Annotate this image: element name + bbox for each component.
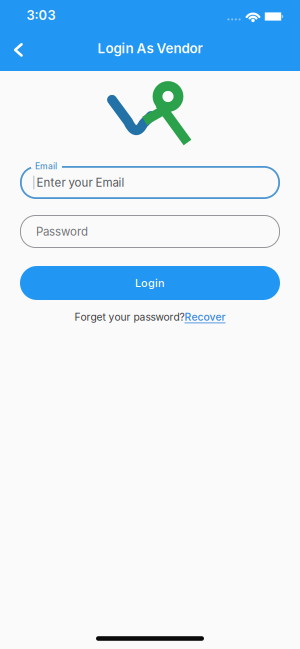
staticText: Login As Vendor — [97, 40, 202, 57]
button[interactable]: Password — [20, 215, 280, 248]
staticText: Password — [36, 224, 88, 238]
button[interactable]: Recover — [184, 311, 225, 323]
staticText: Email — [35, 161, 57, 171]
staticText: Recover — [184, 311, 225, 323]
staticText: Enter your Email — [36, 175, 124, 189]
button[interactable]: Back — [5, 37, 35, 59]
staticText: Forget your password? — [74, 311, 184, 323]
staticText: Login — [135, 276, 165, 290]
staticText: 3:03 — [26, 7, 55, 23]
button[interactable]: Email, Enter your Email — [20, 166, 280, 199]
button[interactable]: Login — [20, 266, 280, 300]
